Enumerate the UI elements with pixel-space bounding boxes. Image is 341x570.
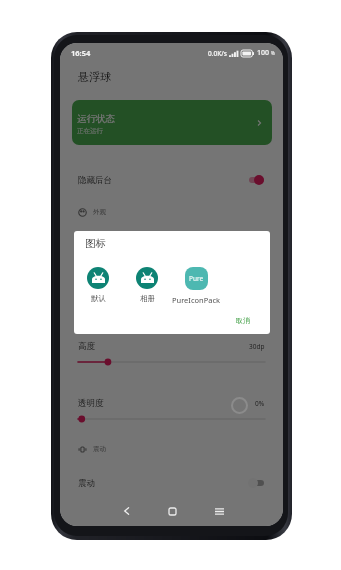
button[interactable]: 取消 (227, 312, 259, 329)
staticText: 0% (255, 399, 265, 408)
staticText: 相册 (140, 294, 155, 303)
staticText: 高度 (78, 341, 95, 352)
button[interactable]: 隐藏后台 (60, 166, 283, 194)
staticText: 0.0K/s (208, 49, 227, 58)
button[interactable]: 默认 (74, 267, 128, 303)
button[interactable]: 震动 (60, 469, 283, 497)
staticText: 取消 (236, 316, 250, 325)
button[interactable]: Back (114, 499, 138, 523)
staticText: 隐藏后台 (78, 175, 112, 186)
staticText: 图标 (85, 237, 106, 250)
staticText: 透明度 (78, 398, 104, 409)
button[interactable]: 相册 (117, 267, 177, 303)
staticText: 默认 (91, 294, 106, 303)
staticText: 震动 (93, 445, 106, 453)
staticText: 100 (257, 48, 270, 58)
staticText: 运行状态 (77, 113, 115, 125)
staticText: 正在运行 (77, 127, 103, 135)
button[interactable]: 运行状态 (72, 100, 272, 145)
staticText: 外观 (93, 208, 106, 216)
staticText: PureIconPack (172, 295, 221, 305)
staticText: Pure (189, 274, 204, 283)
staticText: % (271, 50, 275, 56)
staticText: 悬浮球 (78, 70, 111, 84)
button[interactable]: Recents (207, 499, 231, 523)
button[interactable]: Home (160, 499, 184, 523)
button[interactable]: Pure (166, 267, 226, 305)
staticText: 30dp (249, 342, 265, 351)
staticText: 震动 (78, 478, 95, 489)
staticText: 16:54 (71, 48, 91, 58)
